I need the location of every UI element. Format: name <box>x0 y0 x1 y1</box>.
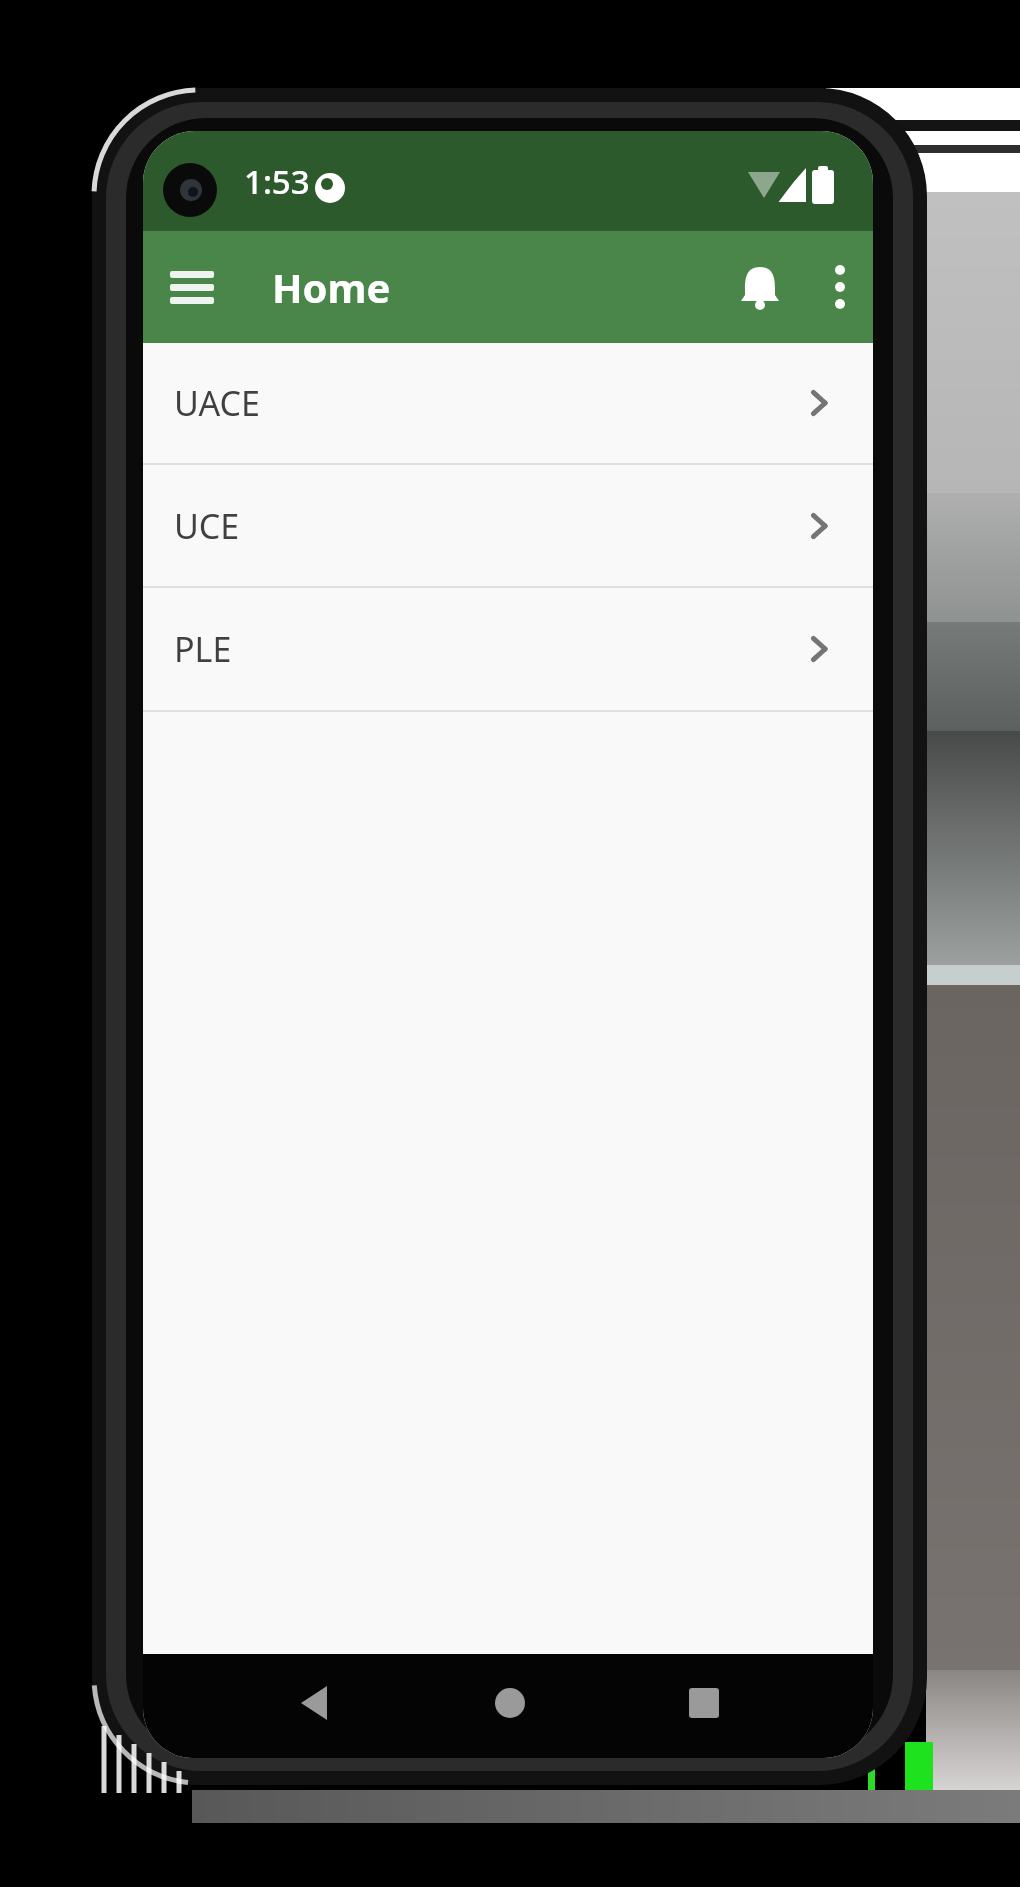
button[interactable]: UACE <box>143 343 873 463</box>
button[interactable]: PLE <box>143 588 873 710</box>
staticText: Home <box>272 260 391 314</box>
button[interactable] <box>468 1664 552 1748</box>
button[interactable] <box>810 252 870 322</box>
button[interactable] <box>725 252 795 322</box>
button[interactable]: UCE <box>143 465 873 586</box>
button[interactable] <box>662 1664 746 1748</box>
staticText: UACE <box>174 380 260 426</box>
staticText: PLE <box>174 626 232 672</box>
button[interactable] <box>157 231 227 343</box>
staticText: 1:53 <box>244 159 310 204</box>
staticText: UCE <box>174 503 240 549</box>
button[interactable] <box>273 1664 357 1748</box>
